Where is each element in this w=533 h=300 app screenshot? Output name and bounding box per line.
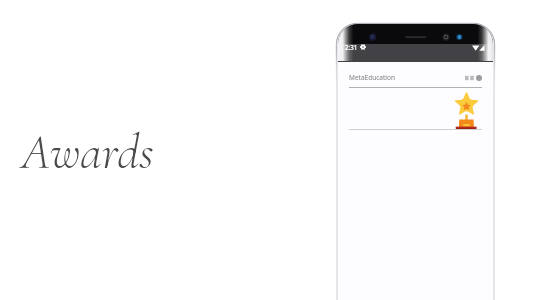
staticText: MetaEducation (349, 73, 395, 82)
other: Wi-Fi and signal (472, 45, 485, 51)
staticText: Awards (21, 122, 154, 182)
other: Account (476, 75, 482, 81)
staticText: 2:31 (345, 43, 358, 51)
other: Award trophy (453, 89, 480, 129)
other: Settings (360, 44, 366, 50)
button[interactable]: MetaEducation (338, 62, 493, 87)
button[interactable]: Award trophy (338, 88, 493, 129)
other: Menu (465, 75, 474, 81)
